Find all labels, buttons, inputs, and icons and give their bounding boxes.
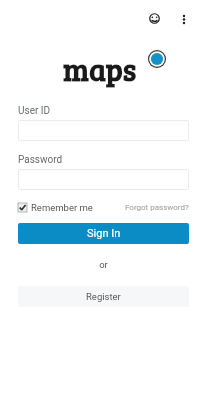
- staticText: Sign In: [87, 227, 121, 240]
- staticText: Forgot password?: [125, 203, 189, 212]
- button[interactable]: [18, 169, 189, 190]
- staticText: Remember me: [31, 202, 93, 213]
- button[interactable]: Forgot password?: [125, 203, 189, 212]
- button[interactable]: Remember me: [18, 202, 93, 213]
- staticText: Register: [86, 291, 121, 302]
- staticText: User ID: [18, 105, 51, 117]
- staticText: maps: [63, 49, 137, 90]
- button[interactable]: Sign In: [18, 223, 189, 244]
- button[interactable]: Send feedback: [142, 6, 167, 31]
- button[interactable]: Register: [18, 286, 189, 307]
- staticText: Password: [18, 154, 63, 166]
- button[interactable]: More options: [171, 6, 196, 31]
- button[interactable]: [18, 120, 189, 141]
- staticText: or: [99, 259, 108, 270]
